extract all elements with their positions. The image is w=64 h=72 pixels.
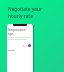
staticText: hourly rate — [8, 13, 33, 19]
staticText: Negotiation tips — [8, 28, 31, 35]
button[interactable]: Negotiation tips — [7, 24, 33, 72]
staticText: Negotiate your — [8, 6, 42, 12]
